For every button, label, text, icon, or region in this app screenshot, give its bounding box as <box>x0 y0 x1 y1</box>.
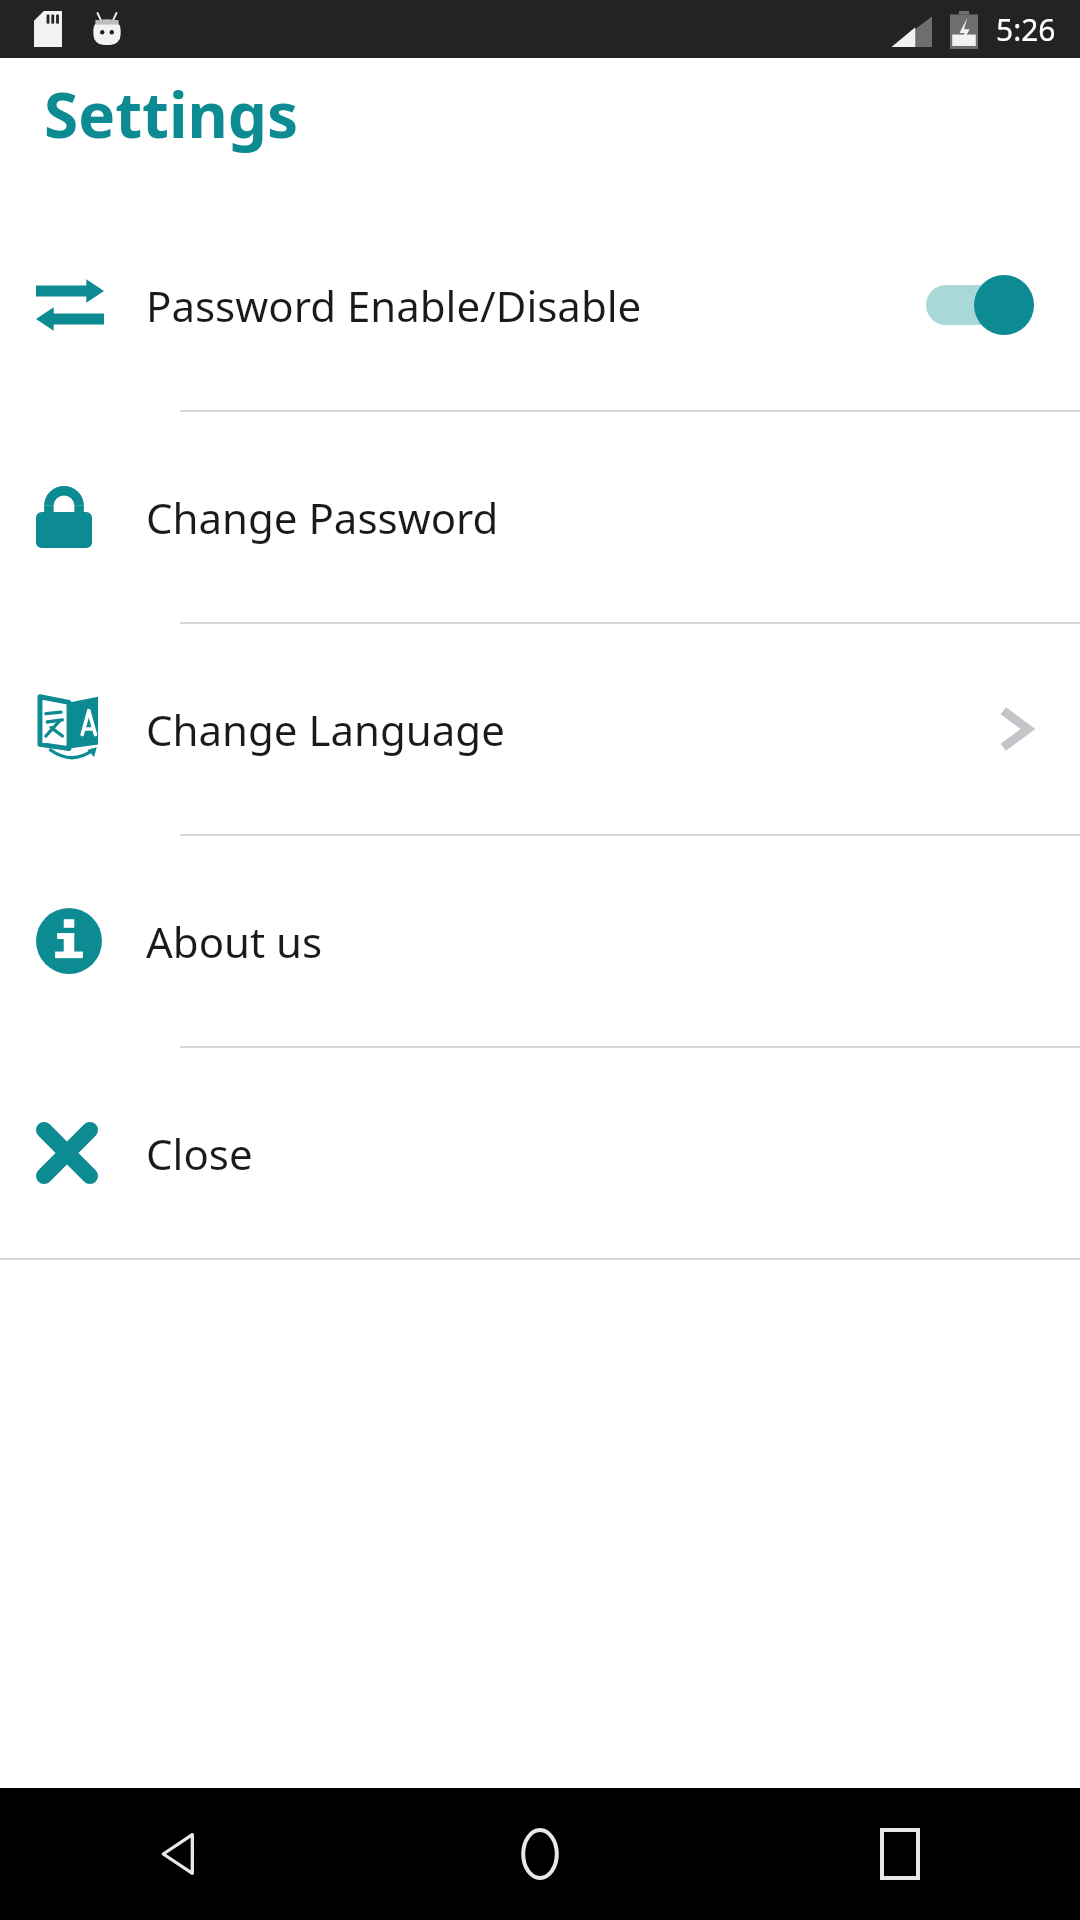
button[interactable]: Password Enable/Disable <box>0 200 1080 410</box>
button[interactable]: Home <box>360 1788 720 1920</box>
staticText: Change Language <box>146 701 1000 758</box>
staticText: Change Password <box>146 489 1034 546</box>
staticText: 5:26 <box>996 9 1056 50</box>
button[interactable]: Back <box>0 1788 360 1920</box>
button[interactable]: About us <box>0 836 1080 1046</box>
button[interactable]: Recent apps <box>720 1788 1080 1920</box>
staticText: Password Enable/Disable <box>146 277 922 334</box>
button[interactable]: Open change language <box>1000 706 1034 752</box>
staticText: Close <box>146 1125 1034 1182</box>
button[interactable]: Change Language <box>0 624 1080 834</box>
button[interactable]: Change Password <box>0 412 1080 622</box>
button[interactable]: Close <box>0 1048 1080 1258</box>
button[interactable]: Password enabled toggle <box>922 275 1034 335</box>
staticText: About us <box>146 913 1034 970</box>
staticText: Settings <box>44 72 299 156</box>
